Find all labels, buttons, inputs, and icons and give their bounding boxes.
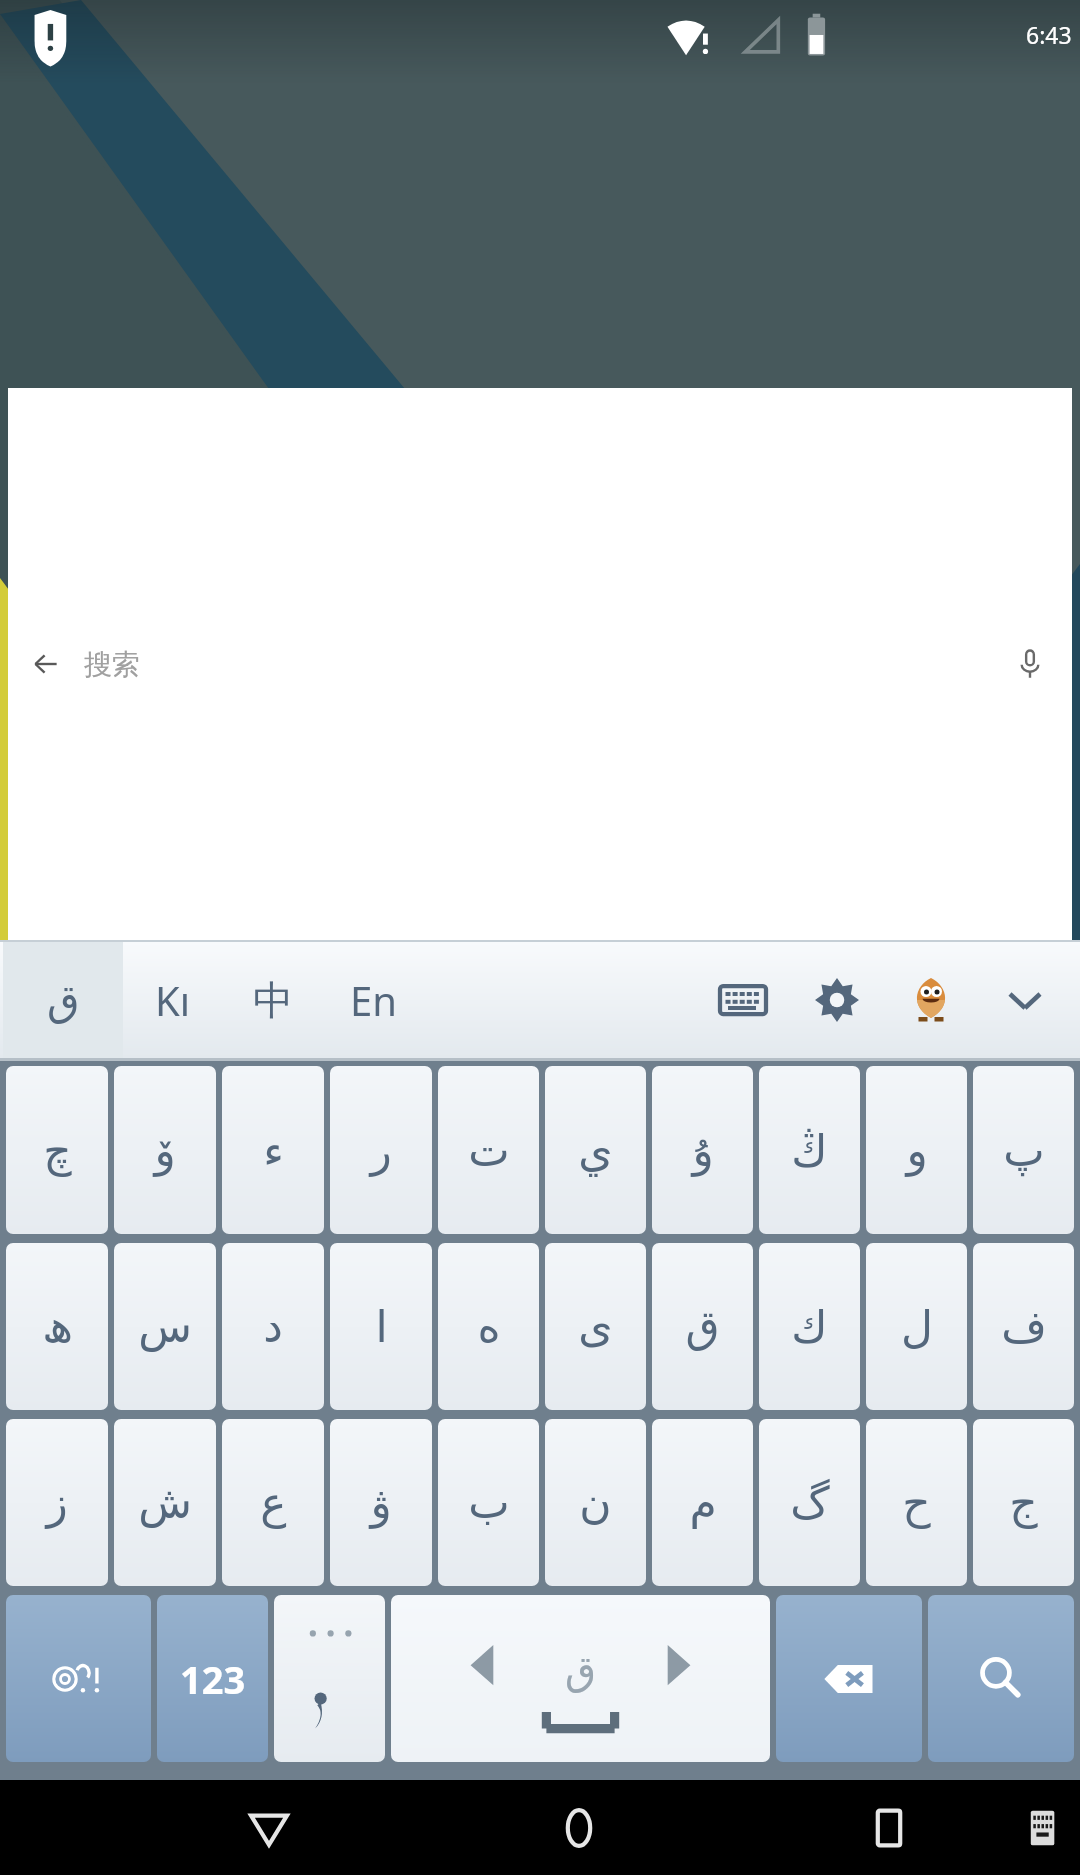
staticText: ع [260,1477,287,1528]
button[interactable]: ح [866,1419,967,1586]
button[interactable]: 中 [223,942,323,1058]
button[interactable]: 123 [157,1595,268,1762]
staticText: ق [565,1647,597,1694]
button[interactable]: م [652,1419,753,1586]
staticText: ە [477,1301,501,1352]
button[interactable]: ج [973,1419,1074,1586]
button[interactable]: Symbols [6,1595,151,1762]
staticText: چ [43,1125,72,1176]
button[interactable]: د [222,1243,324,1410]
staticText: ك [791,1301,828,1352]
staticText: ق [685,1301,720,1352]
button[interactable]: Switch keyboard [1014,1800,1070,1856]
button[interactable]: Voice search [988,388,1072,940]
button[interactable]: و [866,1066,967,1234]
staticText: ل [901,1301,933,1352]
staticText: ب [468,1477,510,1528]
staticText: ڭ [791,1125,828,1176]
staticText: 中 [253,975,293,1025]
staticText: 123 [180,1653,246,1705]
staticText: ء [263,1125,284,1176]
button[interactable]: ۇ [652,1066,753,1234]
button[interactable]: ۆ [114,1066,216,1234]
staticText: En [350,973,397,1027]
staticText: ق [47,976,80,1025]
staticText: ۆ [154,1125,176,1176]
button[interactable]: Mascot [884,942,978,1058]
staticText: ر [370,1125,392,1176]
staticText: 6:43 [1026,19,1072,50]
button[interactable]: ن [545,1419,646,1586]
staticText: ۇ [692,1125,714,1176]
staticText: ج [1009,1477,1038,1528]
button[interactable]: Space [391,1595,770,1762]
button[interactable]: ز [6,1419,108,1586]
button[interactable]: ى [545,1243,646,1410]
button[interactable]: چ [6,1066,108,1234]
button[interactable]: Hide keyboard [978,942,1072,1058]
button[interactable]: Kı [123,942,223,1058]
button[interactable]: ھ [6,1243,108,1410]
button[interactable]: س [114,1243,216,1410]
button[interactable]: Back [8,388,1072,940]
button[interactable]: گ [759,1419,860,1586]
button[interactable]: ق [3,942,123,1058]
staticText: گ [790,1477,830,1528]
button[interactable]: Keyboard layout [696,942,790,1058]
button[interactable]: Backspace [776,1595,922,1762]
staticText: ن [579,1477,612,1528]
button[interactable]: ر [330,1066,432,1234]
staticText: ھ [42,1301,73,1352]
staticText: ش [138,1477,192,1528]
button[interactable]: ڭ [759,1066,860,1234]
staticText: Kı [155,973,191,1027]
staticText: س [138,1301,192,1352]
button[interactable]: ي [545,1066,646,1234]
button[interactable]: Back [241,1800,297,1856]
button[interactable]: Back [8,388,84,940]
button[interactable]: ف [973,1243,1074,1410]
button[interactable]: ع [222,1419,324,1586]
button[interactable]: ل [866,1243,967,1410]
staticText: ا [375,1301,388,1352]
button[interactable]: ت [438,1066,539,1234]
staticText: د [263,1301,283,1352]
button[interactable]: ق [652,1243,753,1410]
staticText: و [906,1125,928,1176]
button[interactable]: En [323,942,423,1058]
button[interactable]: ك [759,1243,860,1410]
button[interactable]: Recents [861,1800,917,1856]
staticText: ف [1001,1301,1047,1352]
staticText: پ [1003,1125,1045,1176]
button[interactable]: ب [438,1419,539,1586]
staticText: م [689,1477,717,1528]
staticText: 搜索 [84,647,988,682]
button[interactable]: ا [330,1243,432,1410]
button[interactable]: ە [438,1243,539,1410]
button[interactable]: Settings [790,942,884,1058]
button[interactable]: پ [973,1066,1074,1234]
button[interactable]: ش [114,1419,216,1586]
button[interactable]: ۋ [330,1419,432,1586]
staticText: ز [46,1477,68,1528]
staticText: ۋ [370,1477,392,1528]
staticText: ت [468,1125,510,1176]
button[interactable]: ء [222,1066,324,1234]
staticText: ح [902,1477,931,1528]
button[interactable]: Search [928,1595,1074,1762]
staticText: ي [578,1125,613,1176]
staticText: ى [578,1301,613,1352]
button[interactable]: Comma [274,1595,385,1762]
button[interactable]: Home [551,1800,607,1856]
